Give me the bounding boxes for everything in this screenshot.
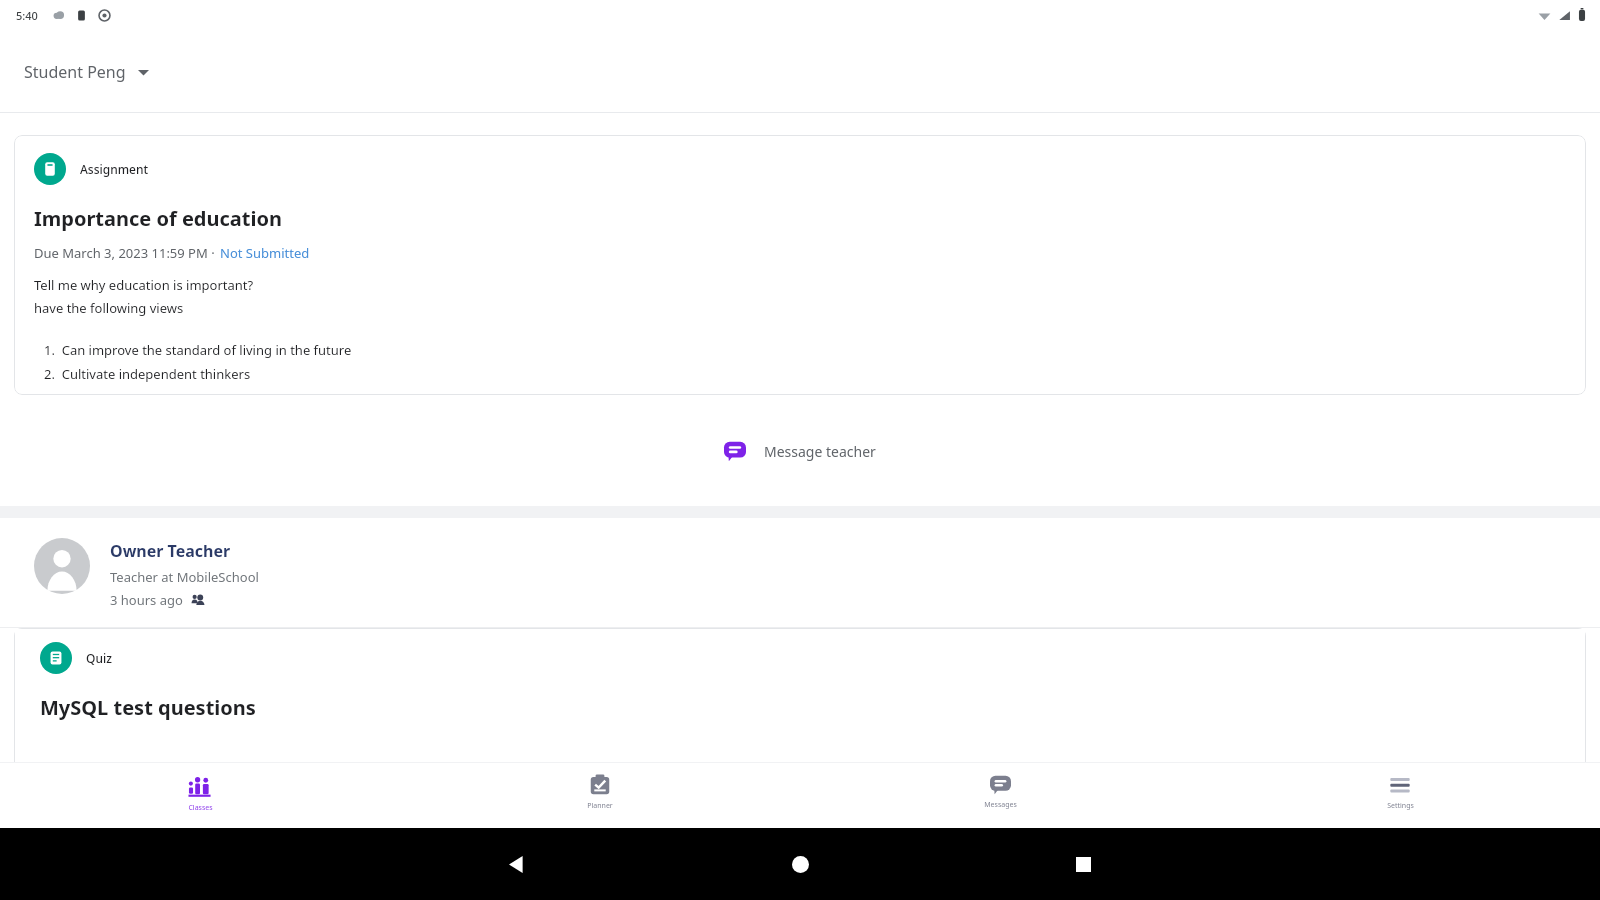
button[interactable]: Planner — [400, 763, 800, 828]
staticText: 1. Can improve the standard of living in… — [44, 341, 352, 359]
staticText: 3 hours ago — [110, 591, 183, 609]
button[interactable]: Assignment — [14, 135, 1586, 395]
staticText: 2. Cultivate independent thinkers — [44, 365, 251, 383]
button[interactable]: Classes — [0, 763, 400, 828]
staticText: Tell me why education is important? — [34, 276, 254, 294]
staticText: Settings — [1387, 801, 1414, 811]
staticText: Planner — [587, 801, 613, 811]
staticText: Assignment — [80, 161, 149, 177]
button[interactable]: Student Peng — [18, 55, 155, 89]
staticText: Due March 3, 2023 11:59 PM · — [34, 244, 215, 262]
staticText: Message teacher — [764, 442, 876, 461]
button[interactable]: Settings — [1200, 763, 1600, 828]
staticText: Classes — [188, 803, 213, 813]
staticText: Not Submitted — [220, 244, 310, 262]
staticText: have the following views — [34, 299, 184, 317]
staticText: Messages — [984, 800, 1017, 810]
staticText: Owner Teacher — [110, 540, 231, 562]
button[interactable]: Home — [783, 847, 817, 881]
button[interactable]: Quiz — [14, 628, 1586, 762]
button[interactable]: Message teacher — [714, 432, 886, 470]
button[interactable]: Back — [500, 847, 534, 881]
staticText: Quiz — [86, 650, 112, 666]
staticText: Student Peng — [24, 61, 126, 83]
staticText: MySQL test questions — [40, 694, 256, 721]
staticText: Importance of education — [34, 205, 282, 232]
staticText: Teacher at MobileSchool — [110, 568, 259, 586]
button[interactable]: Owner Teacher — [0, 518, 1600, 627]
button[interactable]: Recent apps — [1066, 847, 1100, 881]
button[interactable]: Messages — [800, 763, 1200, 828]
staticText: 5:40 — [16, 8, 38, 23]
